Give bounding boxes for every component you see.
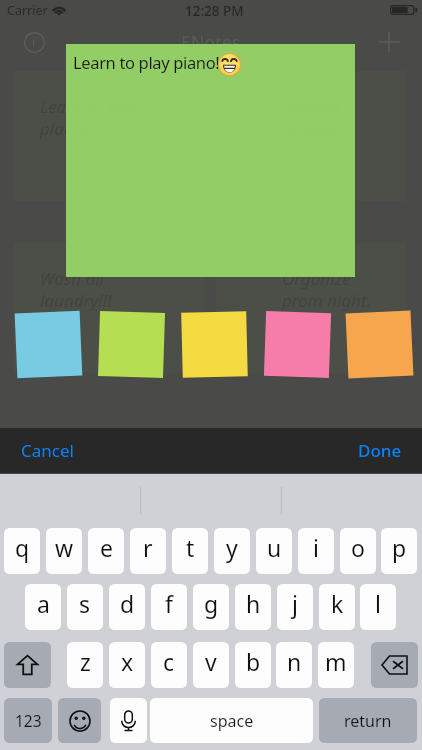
button[interactable]: Shift — [4, 642, 51, 688]
button[interactable]: f — [151, 584, 187, 630]
button[interactable]: Colour swatch — [181, 311, 248, 378]
button[interactable]: Dictate — [110, 698, 147, 743]
button[interactable]: b — [235, 642, 271, 688]
button[interactable]: c — [151, 642, 187, 688]
staticText: j — [292, 588, 298, 619]
button[interactable]: z — [67, 642, 103, 688]
button[interactable]: u — [256, 528, 292, 574]
button[interactable]: e — [88, 528, 124, 574]
staticText: ENotes — [181, 30, 241, 54]
staticText: q — [15, 532, 30, 563]
button[interactable]: y — [214, 528, 250, 574]
button[interactable]: t — [172, 528, 208, 574]
staticText: 123 — [15, 710, 42, 731]
staticText: space — [210, 710, 254, 732]
button[interactable]: i — [298, 528, 334, 574]
staticText: t — [186, 532, 195, 563]
button[interactable]: d — [109, 584, 145, 630]
staticText: d — [120, 588, 135, 619]
staticText: f — [165, 588, 173, 619]
staticText: n — [287, 646, 302, 677]
button[interactable]: Done — [322, 428, 422, 473]
staticText: Done — [358, 439, 402, 462]
staticText: u — [267, 532, 282, 563]
button[interactable]: Organize prom night. — [216, 243, 406, 373]
button[interactable]: q — [4, 528, 40, 574]
button[interactable]: g — [193, 584, 229, 630]
button[interactable]: Emoji keyboard — [58, 698, 101, 743]
staticText: o — [351, 532, 365, 563]
button[interactable]: m — [318, 642, 354, 688]
staticText: r — [143, 532, 153, 563]
staticText: 12:28 PM — [185, 2, 244, 20]
button[interactable]: o — [340, 528, 376, 574]
staticText: Learn to play piano! — [73, 51, 220, 73]
staticText: Carrier — [7, 2, 48, 19]
staticText: s — [79, 588, 91, 619]
staticText: y — [226, 532, 238, 563]
button[interactable]: h — [235, 584, 271, 630]
button[interactable]: Become athlete... — [216, 71, 406, 201]
staticText: v — [205, 646, 217, 677]
button[interactable]: n — [276, 642, 312, 688]
staticText: a — [37, 588, 50, 619]
staticText: h — [246, 588, 261, 619]
staticText: e — [100, 532, 113, 563]
button[interactable]: Learn to play piano!... — [14, 71, 204, 201]
button[interactable]: return — [319, 698, 417, 743]
staticText: l — [375, 588, 381, 619]
button[interactable]: x — [109, 642, 145, 688]
button[interactable]: Info — [20, 28, 48, 56]
staticText: p — [392, 532, 407, 563]
button[interactable]: l — [360, 584, 396, 630]
button[interactable]: Add note — [375, 28, 403, 56]
staticText: Learn to play piano!... — [40, 95, 139, 140]
button[interactable]: a — [25, 584, 61, 630]
button[interactable]: Colour swatch — [345, 311, 413, 378]
button[interactable]: v — [193, 642, 229, 688]
staticText: return — [344, 710, 392, 732]
button[interactable]: r — [130, 528, 166, 574]
button[interactable]: p — [381, 528, 417, 574]
button[interactable]: space — [150, 698, 313, 743]
staticText: Organize prom night. — [282, 267, 372, 312]
staticText: b — [246, 646, 261, 677]
button[interactable]: k — [319, 584, 355, 630]
button[interactable]: s — [67, 584, 103, 630]
staticText: w — [55, 532, 74, 563]
staticText: k — [331, 588, 344, 619]
staticText: x — [121, 646, 134, 677]
staticText: i — [32, 33, 36, 51]
button[interactable]: 123 — [4, 698, 52, 743]
button[interactable]: j — [277, 584, 313, 630]
staticText: z — [80, 646, 91, 677]
staticText: m — [325, 646, 347, 677]
staticText: c — [163, 646, 175, 677]
staticText: g — [204, 588, 219, 619]
button[interactable]: Colour swatch — [264, 311, 331, 378]
button[interactable]: Learn to play piano! — [66, 44, 355, 277]
button[interactable]: Colour swatch — [98, 311, 165, 378]
button[interactable]: w — [46, 528, 82, 574]
button[interactable]: Cancel — [0, 428, 100, 473]
button[interactable]: Colour swatch — [15, 311, 82, 378]
staticText: Wash all laundry!!! — [40, 267, 112, 312]
button[interactable]: Backspace — [371, 642, 418, 688]
button[interactable]: Wash all laundry!!! — [14, 243, 204, 373]
staticText: Cancel — [21, 439, 74, 462]
staticText: i — [313, 532, 319, 563]
